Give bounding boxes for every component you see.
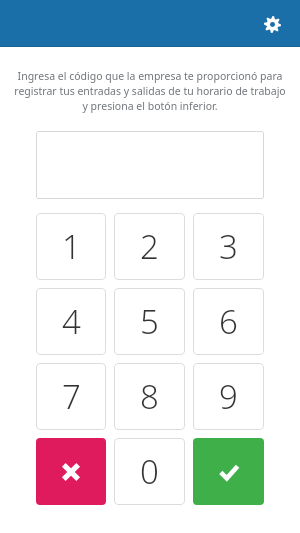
staticText: Ingresa el código que la empresa te prop… bbox=[14, 69, 286, 113]
staticText: 5 bbox=[140, 299, 159, 344]
button[interactable]: 5 bbox=[114, 288, 185, 355]
staticText: 7 bbox=[62, 374, 81, 419]
staticText: 6 bbox=[219, 299, 238, 344]
staticText: 8 bbox=[140, 374, 159, 419]
button[interactable]: 6 bbox=[193, 288, 264, 355]
staticText: 3 bbox=[219, 224, 238, 269]
button[interactable]: Confirm bbox=[193, 438, 264, 505]
staticText: 2 bbox=[140, 224, 159, 269]
button[interactable]: 0 bbox=[114, 438, 185, 505]
button[interactable]: Clear bbox=[36, 438, 106, 505]
button[interactable]: 8 bbox=[114, 363, 185, 430]
button[interactable]: 4 bbox=[36, 288, 106, 355]
button[interactable]: Settings bbox=[256, 8, 288, 40]
staticText: 0 bbox=[140, 449, 159, 494]
staticText: 1 bbox=[62, 224, 81, 269]
button[interactable]: 1 bbox=[36, 213, 106, 280]
button[interactable]: 3 bbox=[193, 213, 264, 280]
button[interactable]: 7 bbox=[36, 363, 106, 430]
button[interactable]: 2 bbox=[114, 213, 185, 280]
staticText: 9 bbox=[219, 374, 238, 419]
staticText: 4 bbox=[62, 299, 81, 344]
button[interactable]: 9 bbox=[193, 363, 264, 430]
button[interactable] bbox=[36, 131, 264, 199]
